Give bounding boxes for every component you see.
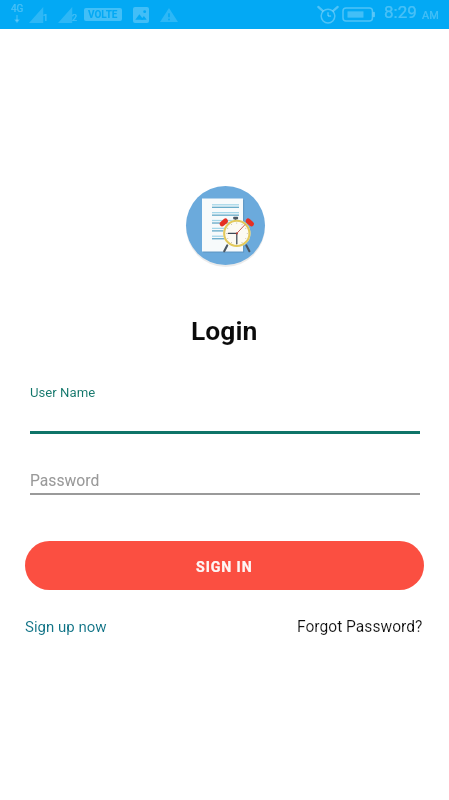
button[interactable]: Password input: [30, 458, 420, 496]
staticText: Sign up now: [25, 618, 107, 636]
staticText: Forgot Password?: [297, 618, 423, 636]
staticText: 4G: [11, 3, 24, 15]
staticText: AM: [422, 9, 439, 22]
button[interactable]: SIGN IN: [25, 541, 424, 590]
staticText: 2: [72, 13, 78, 24]
staticText: SIGN IN: [196, 559, 253, 576]
button[interactable]: Sign up now: [25, 618, 107, 636]
staticText: Login: [191, 315, 258, 346]
button[interactable]: User Name input: [30, 372, 420, 434]
staticText: VOLTE: [88, 9, 118, 21]
button[interactable]: Forgot Password?: [297, 618, 423, 636]
staticText: Password: [30, 471, 100, 489]
staticText: 1: [43, 13, 49, 24]
staticText: 8:29: [384, 2, 417, 22]
staticText: User Name: [30, 385, 96, 400]
